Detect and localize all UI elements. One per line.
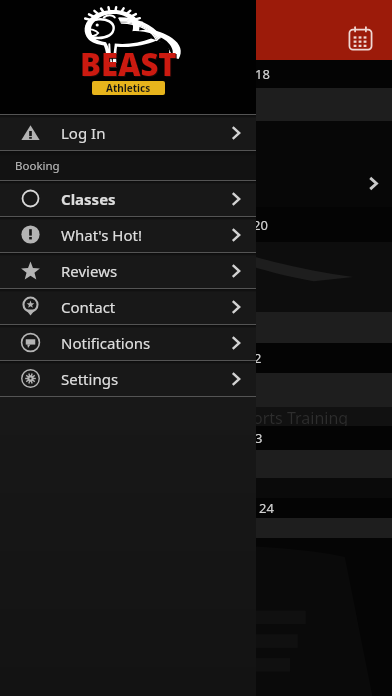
button[interactable]: Reviews — [0, 253, 256, 288]
staticText: Settings — [61, 369, 119, 389]
staticText: Contact — [61, 297, 116, 317]
button[interactable]: Classes — [0, 181, 256, 216]
staticText: Booking — [15, 158, 60, 174]
staticText: orts Training — [253, 407, 349, 426]
staticText: Athletics — [106, 81, 151, 95]
button[interactable]: Log In — [0, 115, 256, 150]
button[interactable]: Calendar — [339, 17, 381, 59]
staticText: Reviews — [61, 261, 118, 281]
button[interactable]: Settings — [0, 361, 256, 396]
button[interactable]: What's Hot! — [0, 217, 256, 252]
button[interactable]: Notifications — [0, 325, 256, 360]
staticText: Classes — [61, 189, 116, 209]
button[interactable]: Contact — [0, 289, 256, 324]
staticText: What's Hot! — [61, 225, 143, 245]
staticText: 20 — [253, 216, 268, 234]
staticText: Notifications — [61, 333, 151, 353]
button[interactable] — [0, 242, 392, 312]
staticText: Log In — [61, 123, 106, 143]
staticText: 24 — [259, 499, 274, 517]
staticText: 2 — [254, 349, 262, 367]
staticText: BEAST — [80, 43, 177, 85]
button[interactable] — [0, 538, 392, 696]
staticText: 3 — [255, 429, 263, 447]
button[interactable] — [0, 121, 392, 207]
staticText: 18 — [255, 65, 270, 83]
staticText: BEAST — [81, 44, 178, 86]
